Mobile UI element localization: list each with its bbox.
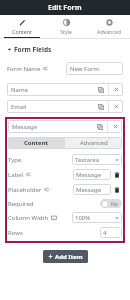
button[interactable]: Required toggle bbox=[100, 199, 122, 208]
button[interactable]: Remove bbox=[108, 120, 122, 133]
staticText: Textarea bbox=[75, 156, 99, 164]
button[interactable]: Content bbox=[0, 15, 44, 38]
staticText: Required bbox=[8, 200, 34, 208]
button[interactable]: Form Fields bbox=[0, 44, 130, 55]
staticText: Placeholder bbox=[8, 186, 42, 194]
button[interactable]: Add Item bbox=[43, 250, 88, 263]
button[interactable]: New Form bbox=[66, 62, 123, 75]
staticText: Edit Form bbox=[48, 3, 82, 13]
staticText: Advanced bbox=[97, 28, 121, 35]
button[interactable]: Name bbox=[7, 83, 123, 96]
button[interactable]: Advanced bbox=[65, 137, 122, 149]
staticText: Advanced bbox=[80, 139, 108, 147]
staticText: Message bbox=[76, 171, 102, 179]
staticText: Type bbox=[8, 156, 22, 164]
staticText: Message bbox=[12, 123, 38, 131]
button[interactable]: Advanced bbox=[87, 15, 130, 38]
staticText: No bbox=[111, 201, 118, 208]
staticText: Column Width bbox=[8, 214, 49, 222]
button[interactable]: Delete bbox=[111, 184, 122, 195]
button[interactable]: Textarea bbox=[72, 154, 122, 165]
staticText: Form Name bbox=[7, 65, 41, 73]
staticText: Style bbox=[60, 28, 72, 35]
staticText: Content bbox=[12, 28, 32, 35]
staticText: 4 bbox=[103, 229, 107, 237]
staticText: 100% bbox=[75, 214, 91, 222]
button[interactable]: 100% bbox=[72, 212, 122, 223]
staticText: Add Item bbox=[55, 253, 83, 261]
staticText: Rows bbox=[8, 229, 23, 237]
staticText: Name bbox=[11, 86, 28, 94]
staticText: Email bbox=[11, 103, 27, 111]
button[interactable]: Email bbox=[7, 100, 123, 113]
button[interactable]: 4 bbox=[100, 227, 122, 238]
button[interactable]: Remove Name bbox=[109, 83, 123, 96]
button[interactable]: Duplicate bbox=[93, 120, 107, 133]
button[interactable]: Remove Email bbox=[109, 100, 123, 113]
staticText: New Form bbox=[70, 65, 99, 73]
button[interactable]: Message bbox=[73, 184, 111, 195]
staticText: Content bbox=[24, 139, 49, 147]
button[interactable]: Duplicate Email bbox=[94, 100, 108, 113]
button[interactable]: Message bbox=[73, 169, 111, 180]
button[interactable]: Message bbox=[8, 120, 122, 133]
button[interactable]: Content bbox=[8, 137, 65, 149]
button[interactable]: Duplicate Name bbox=[94, 83, 108, 96]
button[interactable]: Delete bbox=[111, 169, 122, 180]
staticText: Message bbox=[76, 186, 102, 194]
staticText: Label bbox=[8, 171, 24, 179]
button[interactable]: Style bbox=[44, 15, 87, 38]
staticText: Form Fields bbox=[14, 45, 52, 54]
